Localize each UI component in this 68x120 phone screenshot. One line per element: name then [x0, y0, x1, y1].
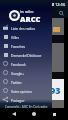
staticText: Liste des radios [11, 26, 35, 30]
staticText: Villes [11, 35, 19, 39]
staticText: Partager [11, 98, 25, 102]
button[interactable]: Votre opinion [0, 86, 52, 95]
button[interactable]: Back [8, 108, 20, 120]
button[interactable]: Favorites [0, 41, 52, 50]
staticText: Favorites [11, 44, 26, 48]
button[interactable]: Facebook [0, 59, 52, 68]
staticText: les radios [20, 10, 34, 14]
button[interactable]: Recents [48, 108, 60, 120]
button[interactable]: Villes [0, 32, 52, 41]
staticText: 93 [50, 84, 61, 96]
staticText: Copyright : ARC En Ciel radio [0, 105, 52, 108]
button[interactable]: Google+ [0, 68, 52, 77]
button[interactable]: Liste des radios [0, 23, 52, 32]
button[interactable]: Demande/Dédicace [0, 50, 52, 59]
staticText: ARCC [20, 14, 41, 24]
staticText: 12:56 [55, 2, 66, 7]
staticText: Google+ [11, 71, 25, 75]
button[interactable]: Partager [0, 95, 52, 104]
staticText: Twitter [11, 80, 22, 84]
staticText: Votre opinion [11, 89, 32, 93]
button[interactable]: Home [28, 108, 40, 120]
staticText: Demande/Dédicace [11, 53, 42, 57]
staticText: Facebook [11, 62, 26, 66]
button[interactable]: Search [57, 9, 65, 17]
button[interactable]: Twitter [0, 77, 52, 86]
